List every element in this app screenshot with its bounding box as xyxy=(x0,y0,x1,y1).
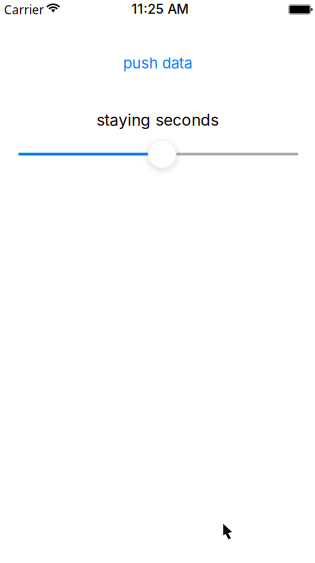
staticText: 11:25 AM xyxy=(131,1,188,17)
button[interactable]: Staying seconds xyxy=(18,137,298,171)
staticText: staying seconds xyxy=(96,110,218,130)
staticText: Carrier xyxy=(4,1,44,17)
staticText: push data xyxy=(123,54,192,72)
button[interactable]: push data xyxy=(95,48,219,78)
